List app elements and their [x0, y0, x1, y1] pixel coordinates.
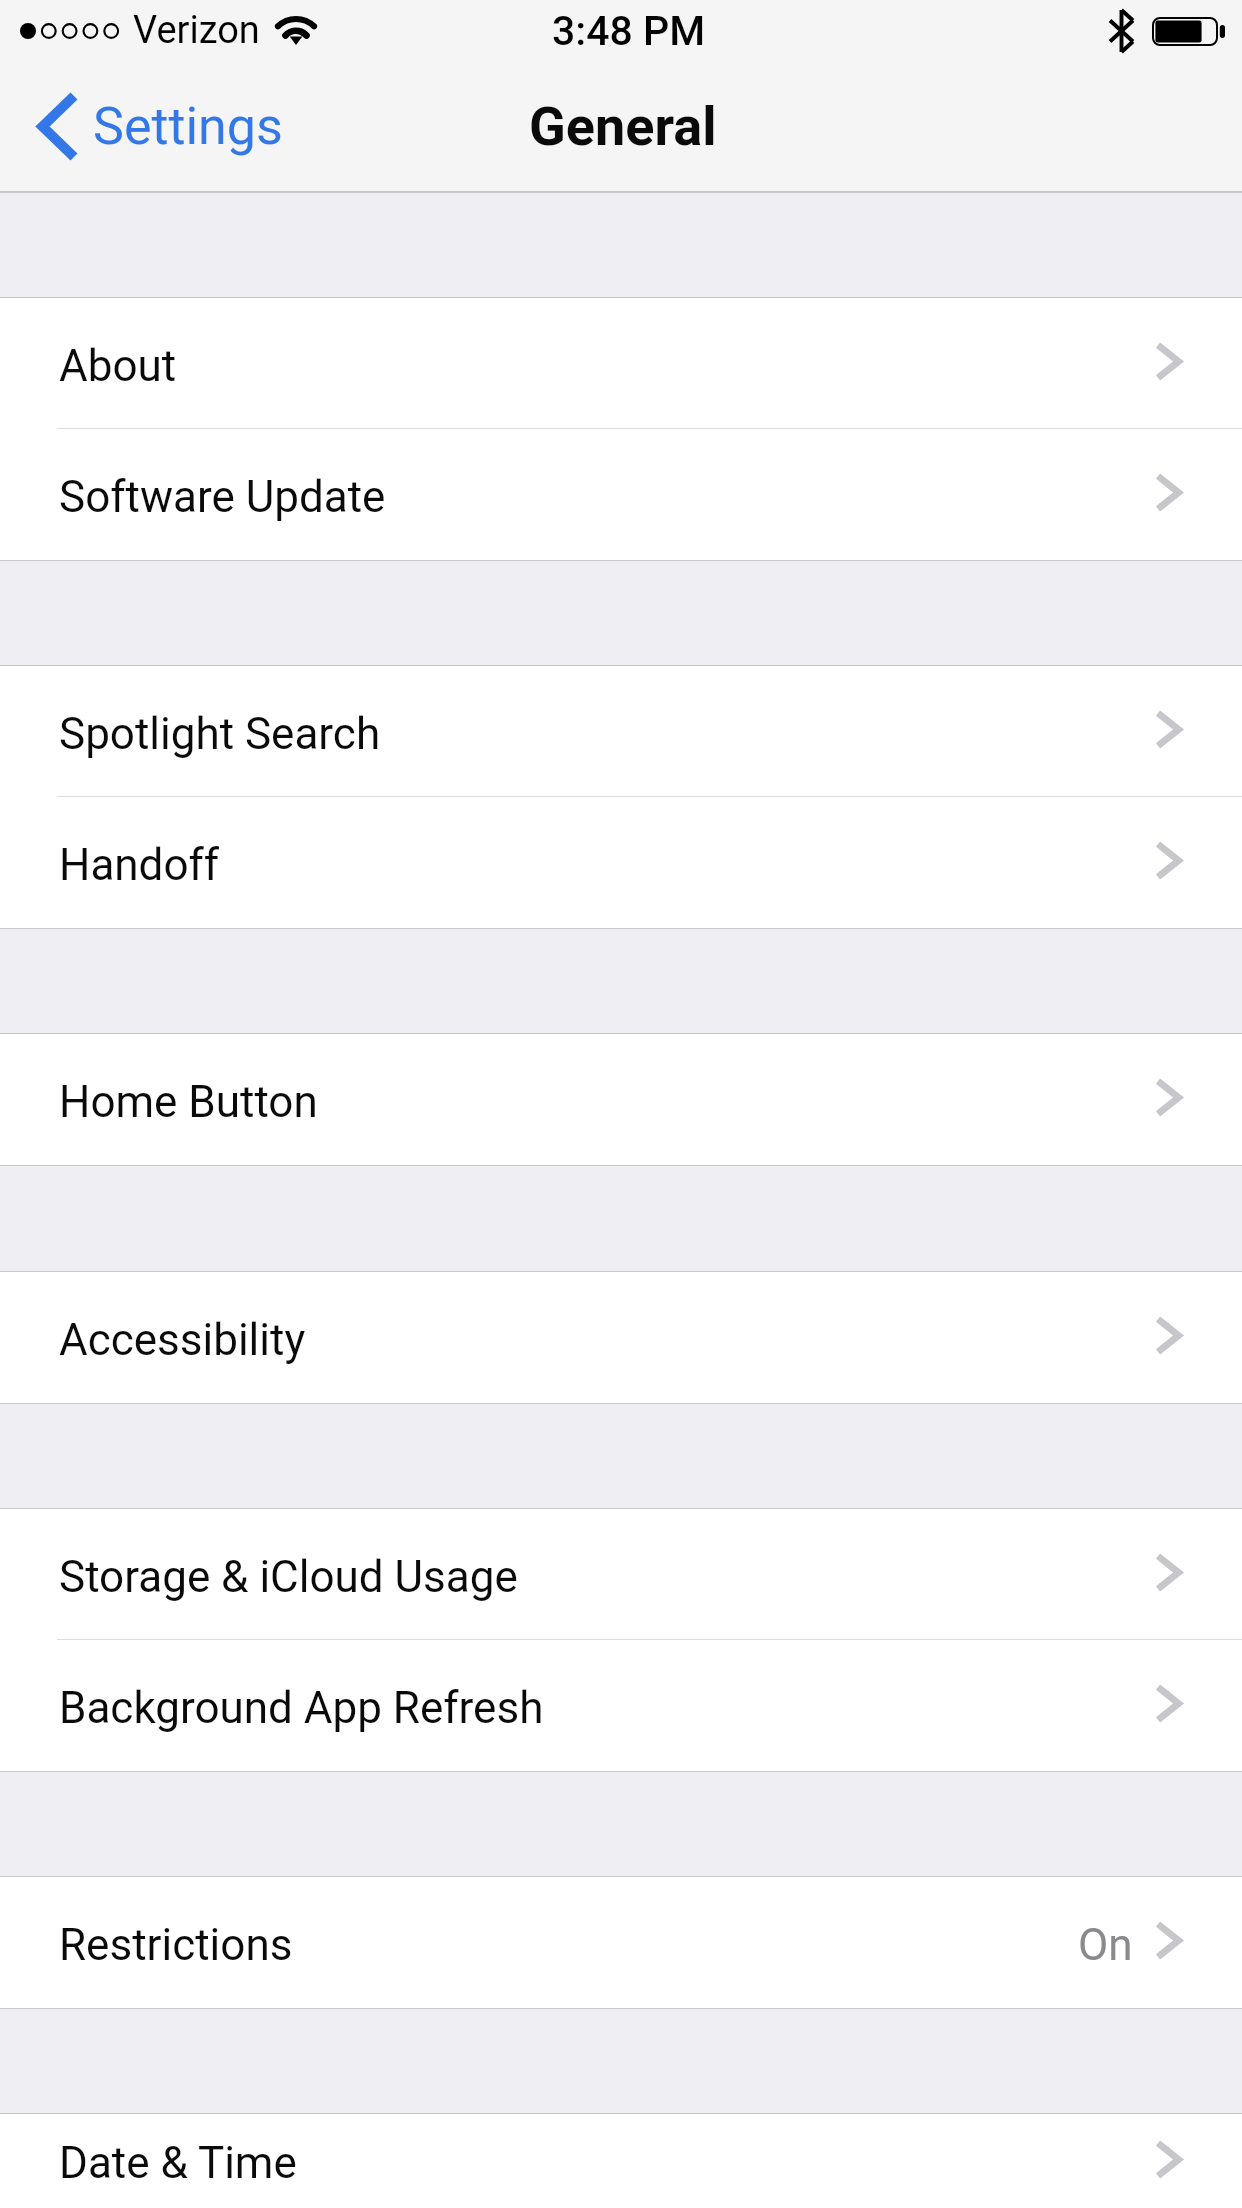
staticText: Accessibility [59, 1314, 306, 1366]
button[interactable]: Accessibility [0, 1272, 1242, 1403]
staticText: Settings [93, 96, 283, 157]
staticText: Storage & iCloud Usage [59, 1551, 518, 1603]
other: Battery [1152, 17, 1225, 46]
staticText: Handoff [59, 839, 220, 891]
button[interactable]: Restrictions [0, 1877, 1242, 2008]
staticText: Restrictions [59, 1919, 293, 1971]
staticText: Spotlight Search [59, 708, 381, 760]
staticText: About [59, 340, 177, 392]
button[interactable]: Storage & iCloud Usage [0, 1509, 1242, 1640]
staticText: Software Update [59, 471, 386, 523]
other: Bluetooth [1110, 10, 1133, 52]
button[interactable]: Background App Refresh [0, 1640, 1242, 1771]
button[interactable]: Software Update [0, 429, 1242, 560]
staticText: On [1078, 1919, 1133, 1971]
button[interactable]: Back to Settings [0, 84, 313, 169]
staticText: Verizon [133, 8, 260, 53]
button[interactable]: Handoff [0, 797, 1242, 928]
staticText: Date & Time [59, 2137, 297, 2189]
staticText: General [529, 95, 717, 158]
staticText: Background App Refresh [59, 1682, 544, 1734]
staticText: 3:48 PM [552, 7, 706, 55]
button[interactable]: Spotlight Search [0, 666, 1242, 797]
button[interactable]: Home Button [0, 1034, 1242, 1165]
button[interactable]: Date & Time [0, 2114, 1242, 2208]
other: Signal strength [20, 21, 120, 41]
button[interactable]: About [0, 298, 1242, 429]
staticText: Home Button [59, 1076, 318, 1128]
other: Wi-Fi [277, 17, 315, 45]
